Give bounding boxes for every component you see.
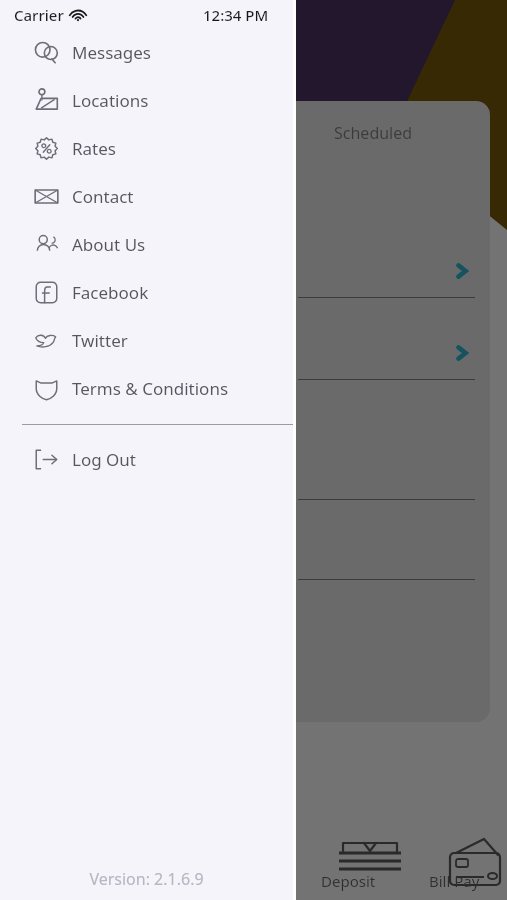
button[interactable]: About Us bbox=[0, 220, 293, 268]
button[interactable]: Facebook bbox=[0, 268, 293, 316]
staticText: Log Out bbox=[72, 448, 136, 471]
staticText: 12:34 PM bbox=[203, 5, 269, 25]
staticText: Version: 2.1.6.9 bbox=[89, 868, 204, 890]
staticText: Locations bbox=[72, 89, 149, 112]
button[interactable]: Twitter bbox=[0, 316, 293, 364]
button[interactable]: Deposit bbox=[296, 822, 401, 900]
staticText: Contact bbox=[72, 185, 134, 208]
staticText: About Us bbox=[72, 233, 146, 256]
button[interactable]: Contact bbox=[0, 172, 293, 220]
button[interactable]: Messages bbox=[0, 28, 293, 76]
button[interactable]: Terms & Conditions bbox=[0, 364, 293, 412]
staticText: Facebook bbox=[72, 281, 149, 304]
button[interactable]: Log Out bbox=[0, 435, 293, 483]
staticText: Messages bbox=[72, 41, 152, 64]
button[interactable]: Bill Pay bbox=[401, 822, 507, 900]
staticText: Terms & Conditions bbox=[72, 377, 229, 400]
staticText: Rates bbox=[72, 137, 116, 160]
staticText: Scheduled bbox=[334, 122, 413, 144]
staticText: Bill Pay bbox=[429, 871, 480, 891]
staticText: Deposit bbox=[321, 871, 376, 891]
button[interactable]: Rates bbox=[0, 124, 293, 172]
button[interactable]: Locations bbox=[0, 76, 293, 124]
staticText: Twitter bbox=[72, 329, 128, 352]
staticText: Carrier bbox=[14, 5, 64, 25]
